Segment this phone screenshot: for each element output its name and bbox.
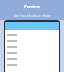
staticText: See how it looks on device bbox=[14, 14, 51, 18]
staticText: Preview bbox=[24, 4, 40, 9]
